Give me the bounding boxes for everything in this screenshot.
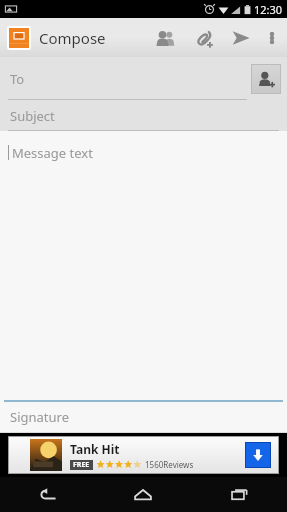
- staticText: Message text: [12, 144, 93, 162]
- button[interactable]: Send: [222, 19, 260, 57]
- staticText: Tank Hit: [70, 441, 120, 457]
- button[interactable]: Tank Hit: [8, 436, 279, 474]
- button[interactable]: Signature: [0, 402, 287, 432]
- staticText: Signature: [10, 408, 69, 426]
- button[interactable]: Home: [95, 477, 191, 512]
- button[interactable]: Subject: [0, 100, 287, 131]
- button[interactable]: App icon: [9, 28, 29, 48]
- button[interactable]: Add people: [146, 19, 184, 57]
- staticText: Subject: [10, 107, 55, 125]
- staticText: Compose: [39, 28, 106, 48]
- staticText: 1560Reviews: [145, 459, 194, 470]
- button[interactable]: Back: [0, 477, 95, 512]
- button[interactable]: More options: [260, 19, 284, 57]
- button[interactable]: Add contact: [251, 64, 281, 94]
- staticText: FREE: [73, 460, 90, 470]
- staticText: To: [10, 70, 25, 88]
- button[interactable]: Install: [245, 442, 271, 468]
- button[interactable]: Message text: [0, 134, 287, 162]
- button[interactable]: To: [0, 57, 239, 100]
- staticText: 12:30: [254, 2, 283, 17]
- button[interactable]: Attach file: [184, 19, 222, 57]
- button[interactable]: Recent apps: [191, 477, 287, 512]
